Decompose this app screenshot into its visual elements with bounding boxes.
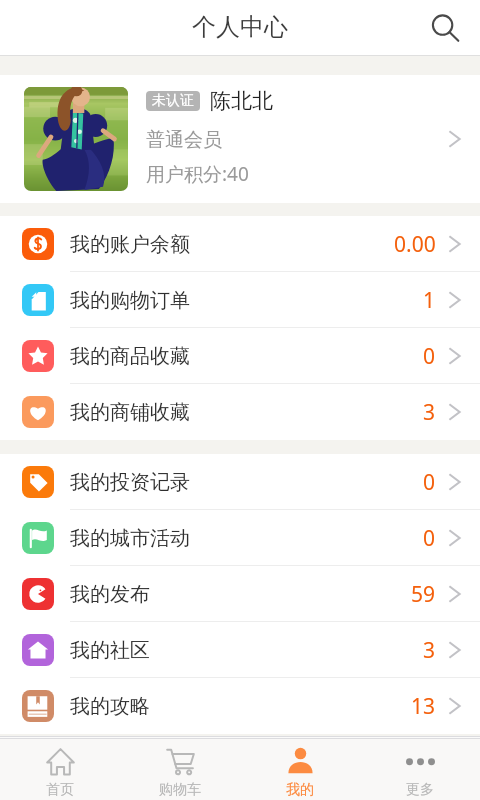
staticText: 未认证 bbox=[152, 92, 194, 110]
staticText: 用户积分:40 bbox=[146, 161, 249, 187]
staticText: 我的账户余额 bbox=[70, 232, 190, 257]
staticText: 13 bbox=[411, 692, 436, 721]
staticText: 我的城市活动 bbox=[70, 526, 190, 551]
staticText: 普通会员 bbox=[146, 128, 222, 152]
button[interactable]: 未认证 bbox=[0, 75, 480, 203]
staticText: 1 bbox=[423, 286, 436, 315]
staticText: 59 bbox=[411, 580, 436, 609]
staticText: 0.00 bbox=[394, 230, 436, 259]
staticText: 我的商品收藏 bbox=[70, 344, 190, 369]
staticText: 我的商铺收藏 bbox=[70, 400, 190, 425]
staticText: 0 bbox=[423, 524, 436, 553]
staticText: 我的投资记录 bbox=[70, 470, 190, 495]
staticText: 陈北北 bbox=[210, 88, 273, 114]
button[interactable]: 购物车 bbox=[120, 739, 240, 800]
button[interactable]: 我的账户余额 bbox=[0, 216, 480, 272]
staticText: 购物车 bbox=[159, 781, 201, 799]
staticText: 个人中心 bbox=[192, 12, 288, 42]
staticText: 我的攻略 bbox=[70, 694, 150, 719]
button[interactable]: 我的发布 bbox=[0, 566, 480, 622]
staticText: 更多 bbox=[406, 781, 434, 799]
staticText: 我的 bbox=[286, 781, 314, 799]
staticText: 0 bbox=[423, 468, 436, 497]
button[interactable]: 我的城市活动 bbox=[0, 510, 480, 566]
button[interactable]: 我的攻略 bbox=[0, 678, 480, 734]
button[interactable]: 我的投资记录 bbox=[0, 454, 480, 510]
button[interactable]: 我的购物订单 bbox=[0, 272, 480, 328]
button[interactable]: 首页 bbox=[0, 739, 120, 800]
staticText: 0 bbox=[423, 342, 436, 371]
button[interactable]: Search bbox=[422, 5, 468, 51]
button[interactable]: 我的社区 bbox=[0, 622, 480, 678]
staticText: 我的发布 bbox=[70, 582, 150, 607]
button[interactable]: 我的商品收藏 bbox=[0, 328, 480, 384]
staticText: 3 bbox=[423, 636, 436, 665]
button[interactable]: 我的 bbox=[240, 739, 360, 800]
staticText: 首页 bbox=[46, 781, 74, 799]
staticText: 3 bbox=[423, 398, 436, 427]
button[interactable]: 我的商铺收藏 bbox=[0, 384, 480, 440]
button[interactable]: 更多 bbox=[360, 739, 480, 800]
staticText: 我的购物订单 bbox=[70, 288, 190, 313]
staticText: 我的社区 bbox=[70, 638, 150, 663]
